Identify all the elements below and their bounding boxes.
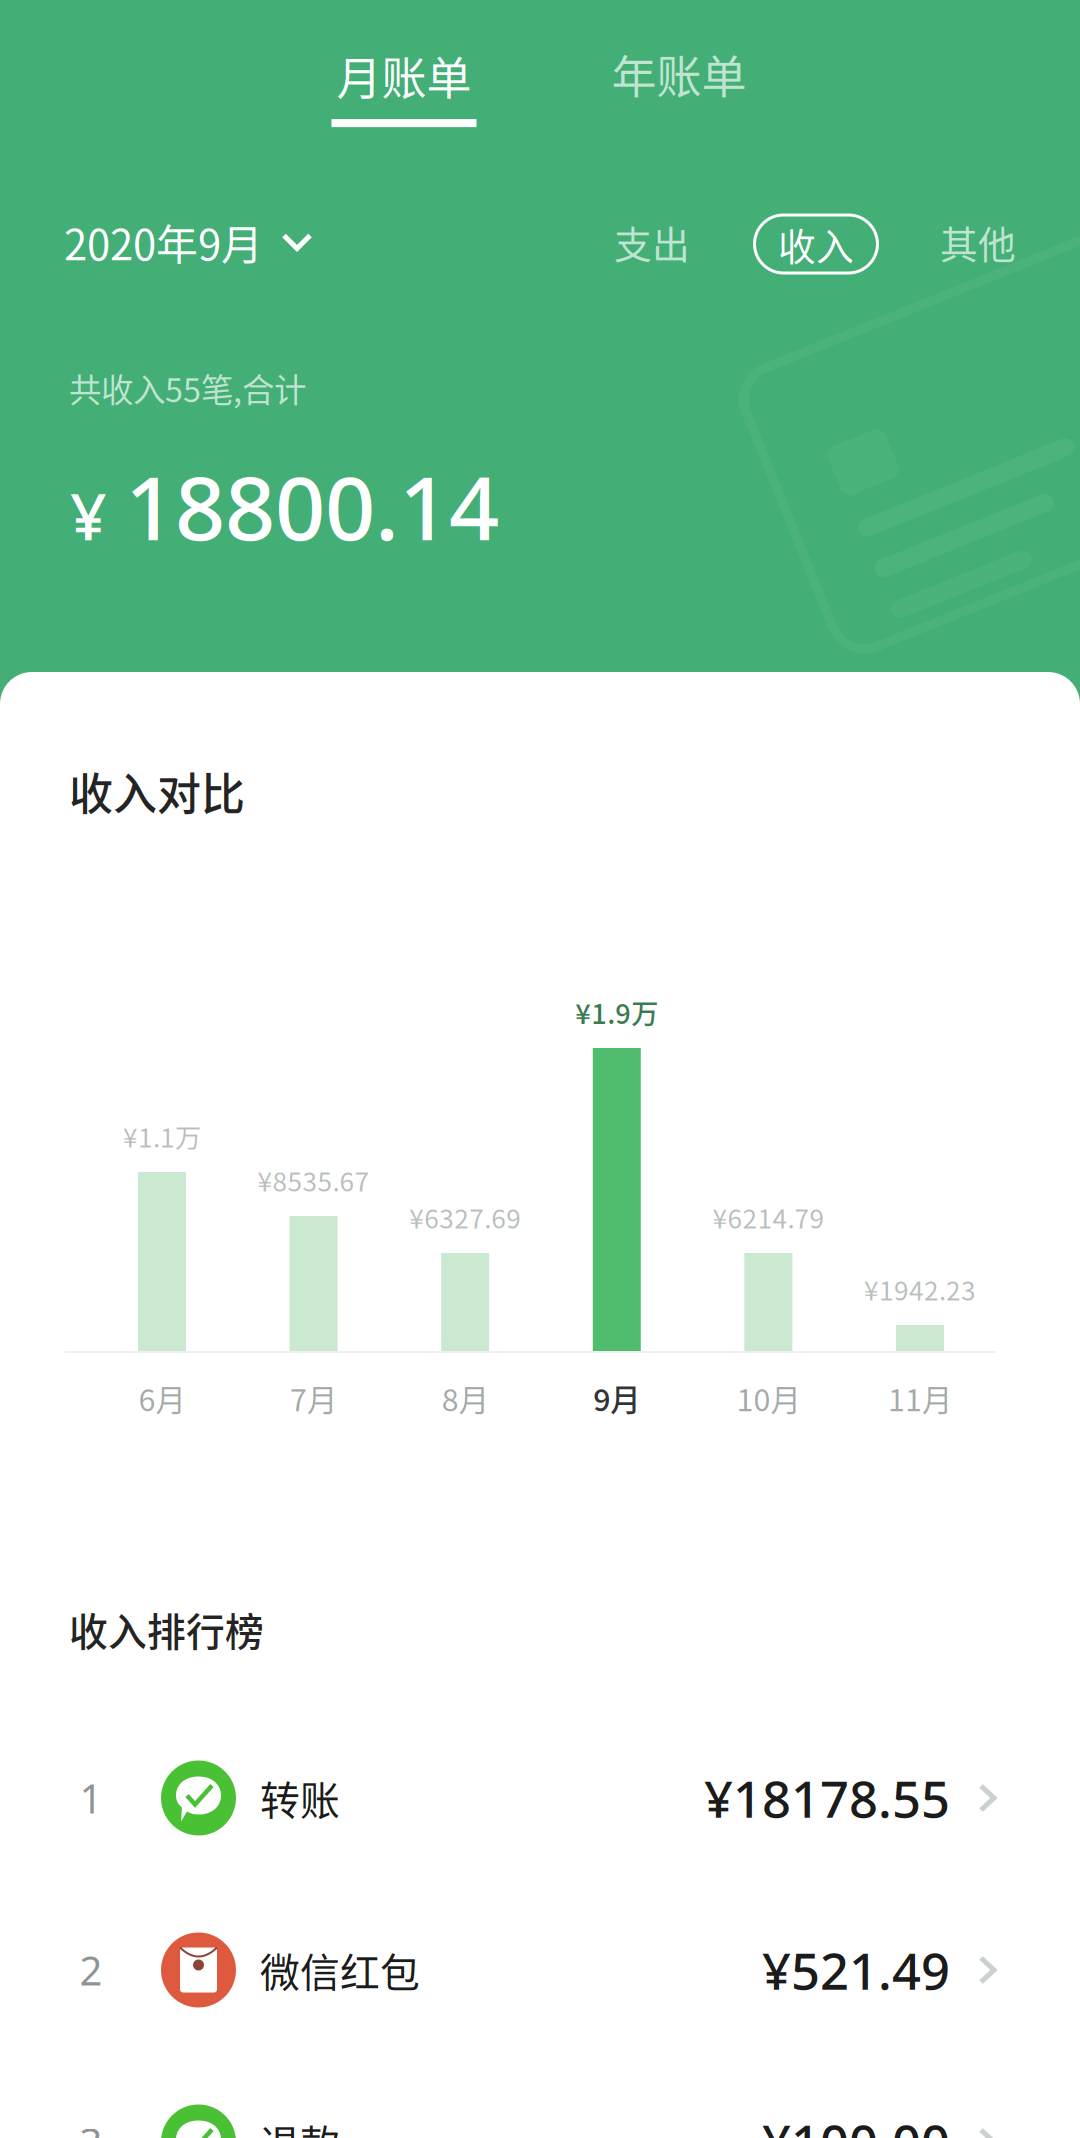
staticText: ¥100.00: [762, 2108, 950, 2138]
staticText: 6月: [138, 1376, 185, 1420]
staticText: 年账单: [611, 41, 746, 107]
staticText: 收入对比: [69, 759, 245, 823]
staticText: 收入: [778, 217, 854, 271]
staticText: 收入排行榜: [69, 1601, 264, 1657]
staticText: ¥18178.55: [704, 1764, 950, 1832]
staticText: 10月: [736, 1376, 800, 1420]
staticText: 支出: [614, 215, 690, 269]
staticText: ¥1.9万: [575, 992, 658, 1032]
staticText: 月账单: [336, 43, 471, 108]
staticText: ¥8535.67: [258, 1161, 370, 1199]
staticText: 7月: [290, 1376, 337, 1420]
staticText: ¥1942.23: [864, 1270, 976, 1308]
button[interactable]: 1: [0, 1712, 1080, 1884]
staticText: ¥: [70, 473, 107, 558]
button[interactable]: 支出: [598, 206, 706, 278]
staticText: 3: [79, 2115, 102, 2138]
button[interactable]: 2020年9月: [58, 200, 319, 284]
staticText: 退款: [260, 2113, 340, 2138]
staticText: ¥6327.69: [409, 1198, 521, 1236]
button[interactable]: 收入: [741, 208, 891, 280]
staticText: ¥521.49: [762, 1936, 950, 2004]
staticText: 9月: [593, 1376, 640, 1420]
button[interactable]: 月账单: [304, 29, 504, 141]
staticText: ¥6214.79: [712, 1198, 824, 1236]
staticText: 8月: [442, 1376, 489, 1420]
staticText: 2: [79, 1943, 102, 1996]
staticText: 2020年9月: [64, 212, 263, 272]
button[interactable]: 3: [0, 2056, 1080, 2138]
button[interactable]: 年账单: [579, 26, 779, 122]
staticText: 微信红包: [260, 1941, 420, 1999]
staticText: 1: [79, 1771, 102, 1824]
staticText: ¥1.1万: [123, 1117, 201, 1155]
button[interactable]: 其他: [924, 206, 1032, 278]
button[interactable]: 2: [0, 1884, 1080, 2056]
staticText: 11月: [888, 1376, 952, 1420]
staticText: 其他: [940, 215, 1016, 269]
staticText: 转账: [260, 1769, 340, 1827]
staticText: 18800.14: [125, 448, 499, 564]
staticText: 共收入55笔,合计: [69, 364, 306, 411]
